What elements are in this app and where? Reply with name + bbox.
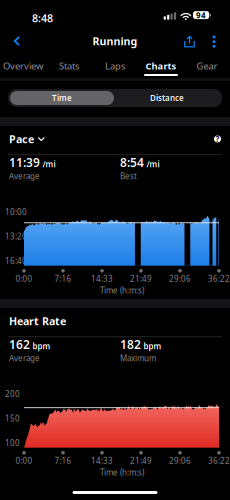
staticText: Charts — [145, 60, 176, 72]
staticText: Time (h:m:s) — [100, 285, 144, 296]
staticText: Maximum — [120, 353, 156, 363]
staticText: 200 — [5, 389, 20, 399]
staticText: 0:00 — [15, 455, 32, 466]
staticText: Stats — [59, 60, 79, 72]
staticText: Running — [92, 34, 137, 48]
staticText: Overview — [3, 60, 43, 72]
button[interactable]: Laps — [92, 56, 138, 76]
staticText: 7:16 — [54, 455, 71, 466]
button[interactable]: About Pace — [210, 132, 224, 146]
staticText: 29:06 — [169, 273, 191, 284]
staticText: Gear — [196, 60, 217, 72]
button[interactable]: Share — [177, 29, 201, 55]
staticText: Laps — [105, 60, 125, 72]
staticText: /mi — [42, 159, 55, 169]
staticText: 8:54 — [120, 154, 144, 170]
staticText: 14:33 — [91, 273, 113, 284]
staticText: 13:20 — [5, 231, 27, 242]
staticText: bpm — [143, 341, 161, 351]
staticText: 21:49 — [130, 455, 152, 466]
button[interactable]: Stats — [46, 56, 92, 76]
staticText: 182 — [120, 336, 141, 352]
staticText: 21:49 — [130, 273, 152, 284]
staticText: Heart Rate — [9, 314, 66, 328]
button[interactable]: Pace — [9, 131, 45, 147]
staticText: Pace — [9, 132, 34, 146]
button[interactable]: More options — [204, 29, 224, 55]
staticText: Average — [9, 171, 40, 181]
button[interactable]: Gear — [184, 56, 230, 76]
button[interactable]: Heart Rate — [9, 313, 66, 329]
staticText: Best — [120, 171, 137, 181]
staticText: 29:06 — [169, 455, 191, 466]
staticText: 36:22 — [208, 273, 230, 284]
staticText: 16:40 — [5, 256, 27, 266]
staticText: Average — [9, 353, 40, 363]
staticText: 100 — [5, 438, 20, 448]
staticText: /mi — [146, 159, 159, 169]
staticText: Distance — [150, 93, 184, 103]
button[interactable]: Charts — [138, 56, 184, 76]
staticText: 0:00 — [15, 273, 32, 284]
button[interactable]: Distance — [114, 91, 220, 105]
button[interactable]: Back — [4, 28, 30, 54]
staticText: 7:16 — [54, 273, 71, 284]
staticText: 94 — [196, 10, 206, 20]
staticText: 14:33 — [91, 455, 113, 466]
button[interactable]: Time — [10, 91, 114, 105]
staticText: 36:22 — [208, 455, 230, 466]
staticText: 8:48 — [32, 11, 53, 25]
staticText: Time — [52, 93, 72, 103]
staticText: 150 — [5, 413, 20, 424]
staticText: 162 — [9, 336, 30, 352]
staticText: 11:39 — [9, 154, 40, 170]
staticText: bpm — [32, 341, 50, 351]
staticText: 10:00 — [5, 207, 27, 217]
button[interactable]: Overview — [0, 56, 46, 76]
staticText: Time (h:m:s) — [100, 467, 144, 478]
staticText: ? — [215, 134, 219, 144]
